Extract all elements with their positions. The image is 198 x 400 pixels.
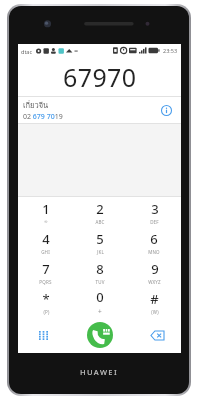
staticText: MNO xyxy=(148,249,160,255)
staticText: 4 xyxy=(42,230,50,248)
staticText: DEF xyxy=(150,219,159,225)
staticText: (W) xyxy=(151,309,159,315)
button[interactable]: Hide dialpad xyxy=(32,324,54,346)
staticText: 8 xyxy=(96,260,104,278)
staticText: 2 xyxy=(96,200,104,218)
staticText: dtac xyxy=(21,48,33,55)
staticText: (P) xyxy=(43,309,50,315)
button[interactable]: 7 xyxy=(18,257,73,287)
staticText: * xyxy=(42,290,50,308)
staticText: 6 xyxy=(150,230,158,248)
button[interactable]: เกี่ยวจีน xyxy=(18,97,181,123)
staticText: 67970 xyxy=(63,60,137,94)
staticText: HUAWEI xyxy=(80,367,118,377)
button[interactable]: 3 xyxy=(127,197,181,227)
button[interactable]: * xyxy=(18,287,73,317)
staticText: TUV xyxy=(95,279,105,285)
button[interactable]: 8 xyxy=(73,257,127,287)
staticText: 23:53 xyxy=(163,47,178,54)
staticText: # xyxy=(150,290,159,308)
button[interactable]: Contact details xyxy=(156,100,176,120)
staticText: JKL xyxy=(97,249,104,255)
staticText: PQRS xyxy=(39,279,52,285)
button[interactable]: 0 xyxy=(73,287,127,317)
staticText: ABC xyxy=(95,219,105,225)
staticText: GHI xyxy=(41,249,50,255)
button[interactable]: 6 xyxy=(127,227,181,257)
staticText: 02 679 7019 xyxy=(23,112,63,122)
staticText: + xyxy=(98,307,102,316)
button[interactable]: 9 xyxy=(127,257,181,287)
staticText: WXYZ xyxy=(148,279,161,285)
button[interactable]: 5 xyxy=(73,227,127,257)
staticText: 3 xyxy=(151,200,159,218)
staticText: 0 xyxy=(96,288,104,306)
staticText: ∞ xyxy=(44,219,48,224)
staticText: 1 xyxy=(42,200,50,218)
button[interactable]: Backspace xyxy=(146,324,168,346)
button[interactable]: Call xyxy=(87,322,113,348)
button[interactable]: # xyxy=(127,287,181,317)
staticText: 7 xyxy=(42,260,50,278)
staticText: 9 xyxy=(151,260,159,278)
button[interactable]: 2 xyxy=(73,197,127,227)
button[interactable]: 1 xyxy=(18,197,73,227)
button[interactable]: 4 xyxy=(18,227,73,257)
staticText: 5 xyxy=(96,230,104,248)
staticText: เกี่ยวจีน xyxy=(23,99,49,111)
